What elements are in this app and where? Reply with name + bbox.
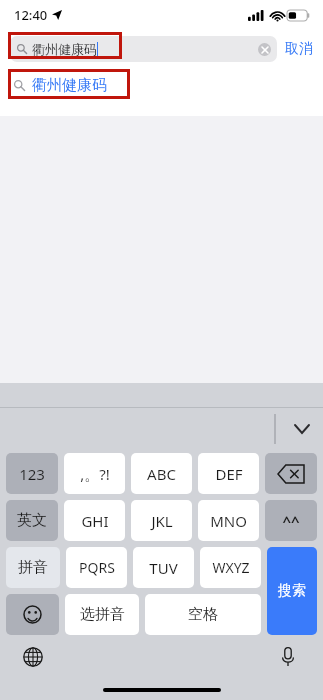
staticText: JKL <box>151 511 173 531</box>
button[interactable]: Emoji <box>6 594 59 635</box>
staticText: MNO <box>210 511 247 531</box>
button[interactable]: MNO <box>198 500 259 541</box>
button[interactable]: WXYZ <box>200 547 261 588</box>
staticText: GHI <box>81 511 109 531</box>
button[interactable]: TUV <box>133 547 194 588</box>
button[interactable]: Hide keyboard <box>291 418 313 440</box>
button[interactable]: 搜索 <box>267 547 317 635</box>
staticText: 英文 <box>17 511 47 530</box>
staticText: WXYZ <box>212 558 250 577</box>
button[interactable]: Dictation <box>275 644 301 670</box>
button[interactable]: DEF <box>198 453 259 494</box>
button[interactable]: Handle <box>269 414 281 444</box>
button[interactable]: 123 <box>6 453 58 494</box>
button[interactable]: Clear <box>258 43 271 56</box>
button[interactable]: 衢州健康码 <box>10 36 277 62</box>
staticText: 12:40 <box>14 6 48 24</box>
button[interactable]: PQRS <box>66 547 127 588</box>
staticText: ,。?! <box>80 464 110 484</box>
staticText: PQRS <box>79 558 115 577</box>
button[interactable]: Delete <box>265 453 317 494</box>
staticText: TUV <box>149 558 178 578</box>
staticText: 衢州健康码 <box>32 41 97 57</box>
button[interactable]: 拼音 <box>6 547 60 588</box>
button[interactable]: 选拼音 <box>65 594 139 635</box>
staticText: 空格 <box>188 605 218 624</box>
button[interactable]: ^^ <box>265 500 317 541</box>
staticText: 选拼音 <box>80 605 125 624</box>
button[interactable]: Change keyboard <box>20 644 46 670</box>
button[interactable]: ,。?! <box>64 453 125 494</box>
staticText: DEF <box>215 464 243 484</box>
button[interactable]: 空格 <box>145 594 261 635</box>
staticText: 衢州健康码 <box>32 76 107 95</box>
button[interactable]: JKL <box>131 500 192 541</box>
button[interactable]: GHI <box>64 500 125 541</box>
button[interactable]: 取消 <box>285 40 313 58</box>
button[interactable]: 衢州健康码 <box>14 68 323 102</box>
staticText: ^^ <box>282 511 300 531</box>
staticText: 拼音 <box>18 558 48 577</box>
button[interactable]: 英文 <box>6 500 58 541</box>
staticText: 取消 <box>285 40 313 58</box>
staticText: 搜索 <box>278 582 306 600</box>
staticText: ABC <box>147 464 176 484</box>
staticText: 123 <box>19 464 45 484</box>
button[interactable]: ABC <box>131 453 192 494</box>
